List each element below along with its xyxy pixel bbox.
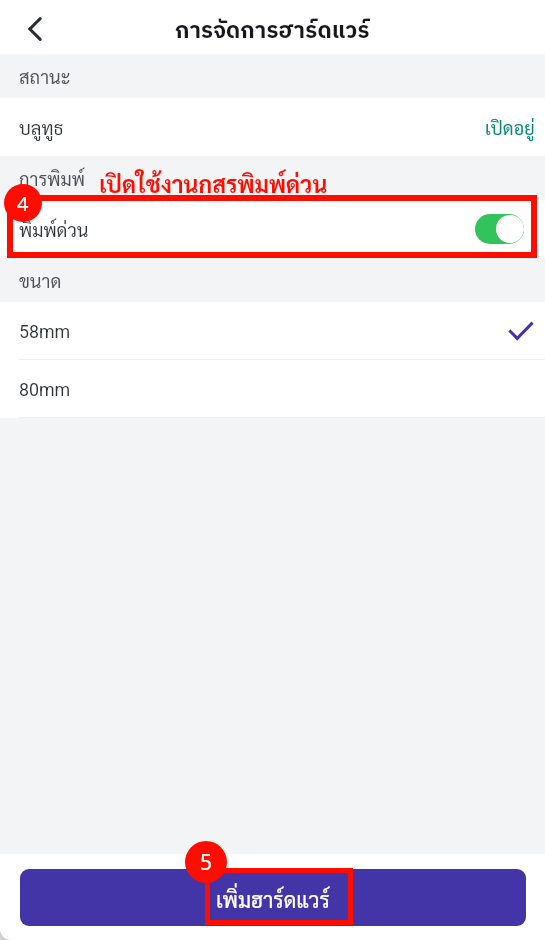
button[interactable]: Back <box>17 11 53 47</box>
staticText: สถานะ <box>19 64 71 88</box>
button[interactable]: บลูทูธ <box>0 98 545 156</box>
staticText: 5 <box>200 848 213 877</box>
staticText: การพิมพ์ <box>19 166 85 190</box>
button[interactable]: 80mm <box>0 360 545 418</box>
button[interactable]: 58mm <box>0 302 545 360</box>
button[interactable]: Quick print toggle, on <box>475 214 524 244</box>
button[interactable]: เพิ่มฮาร์ดแวร์ <box>20 869 526 926</box>
staticText: พิมพ์ด่วน <box>19 217 89 241</box>
staticText: 58mm <box>19 321 71 342</box>
staticText: เปิดใช้งานกสรพิมพ์ด่วน <box>99 168 328 198</box>
staticText: เปิดอยู่ <box>485 115 535 139</box>
staticText: 4 <box>17 190 29 217</box>
staticText: ขนาด <box>19 268 62 292</box>
staticText: บลูทูธ <box>19 115 64 139</box>
button[interactable]: พิมพ์ด่วน <box>0 200 545 258</box>
staticText: การจัดการฮาร์ดแวร์ <box>175 13 370 50</box>
staticText: เพิ่มฮาร์ดแวร์ <box>216 885 330 913</box>
staticText: 80mm <box>19 379 71 400</box>
